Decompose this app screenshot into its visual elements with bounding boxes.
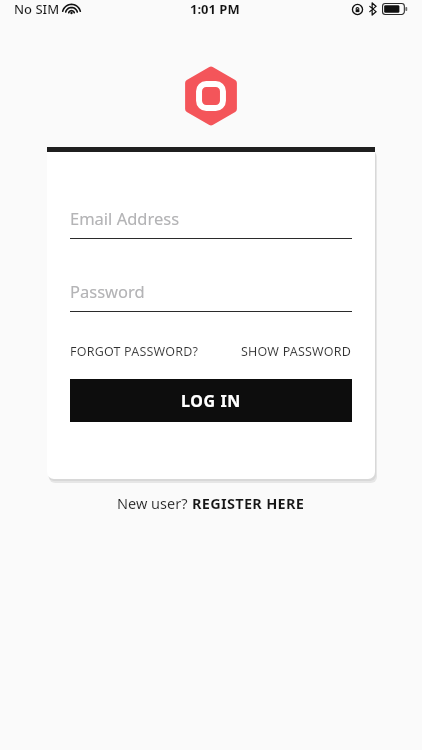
staticText: SHOW PASSWORD <box>241 343 352 360</box>
other: Battery <box>382 3 408 15</box>
button[interactable]: LOG IN <box>70 379 352 422</box>
button[interactable]: Email Address <box>70 207 352 239</box>
staticText: No SIM <box>14 0 60 18</box>
staticText: Password <box>70 280 145 302</box>
button[interactable]: Password <box>70 280 352 312</box>
staticText: New user? <box>117 493 192 513</box>
staticText: 1:01 PM <box>190 0 240 18</box>
button[interactable]: New user? <box>0 493 422 513</box>
staticText: FORGOT PASSWORD? <box>70 343 199 360</box>
button[interactable]: FORGOT PASSWORD? <box>70 343 199 360</box>
staticText: Email Address <box>70 207 180 229</box>
other: App logo <box>185 70 237 122</box>
button[interactable]: SHOW PASSWORD <box>241 343 352 360</box>
other: Rotation lock <box>352 4 363 15</box>
staticText: LOG IN <box>181 390 241 412</box>
other: Wi-Fi <box>65 4 78 14</box>
staticText: REGISTER HERE <box>192 493 305 513</box>
other: Bluetooth <box>369 3 376 15</box>
